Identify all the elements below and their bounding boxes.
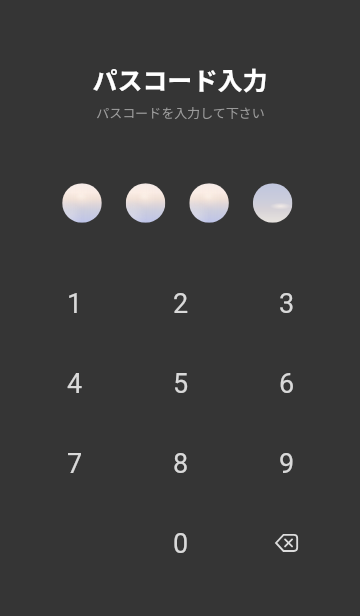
button[interactable]: 6 bbox=[234, 344, 340, 424]
button[interactable]: 9 bbox=[234, 424, 340, 504]
staticText: 9 bbox=[279, 448, 295, 480]
button[interactable]: 4 bbox=[22, 344, 128, 424]
button[interactable]: 2 bbox=[128, 264, 234, 344]
button[interactable]: 0 bbox=[128, 504, 234, 584]
staticText: パスコードを入力して下さい bbox=[96, 103, 265, 122]
staticText: 2 bbox=[173, 288, 189, 320]
button[interactable]: 1 bbox=[22, 264, 128, 344]
button[interactable]: 3 bbox=[234, 264, 340, 344]
staticText: パスコード入力 bbox=[92, 61, 268, 97]
staticText: 5 bbox=[173, 368, 189, 400]
staticText: 3 bbox=[279, 288, 295, 320]
button[interactable]: 7 bbox=[22, 424, 128, 504]
staticText: 0 bbox=[173, 528, 189, 560]
staticText: 1 bbox=[67, 288, 83, 320]
button[interactable]: 5 bbox=[128, 344, 234, 424]
staticText: 8 bbox=[173, 448, 189, 480]
staticText: 4 bbox=[67, 368, 83, 400]
button[interactable]: Backspace bbox=[234, 504, 340, 584]
staticText: 7 bbox=[67, 448, 83, 480]
other: Backspace bbox=[273, 532, 301, 556]
staticText: 6 bbox=[279, 368, 295, 400]
button[interactable]: 8 bbox=[128, 424, 234, 504]
